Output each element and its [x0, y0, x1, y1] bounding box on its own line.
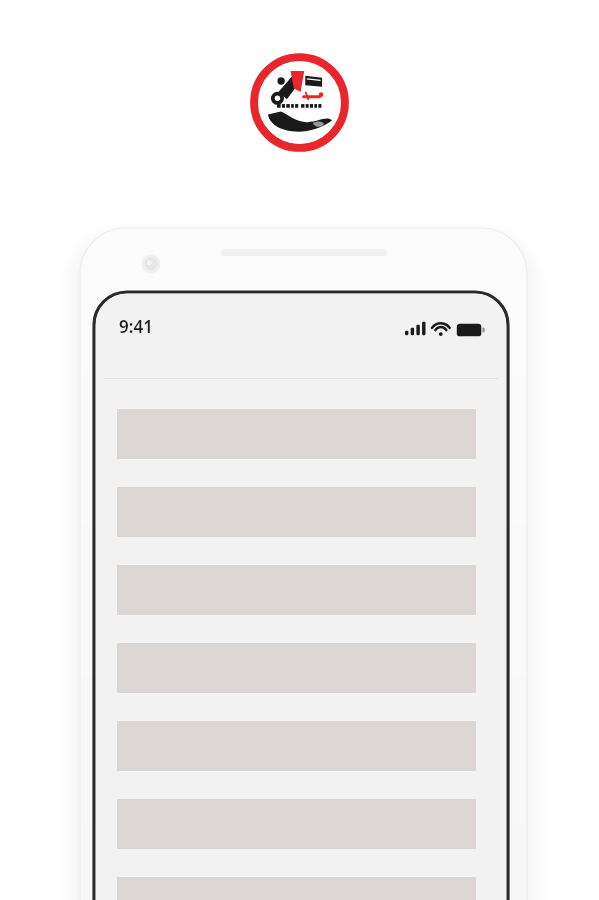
- staticText: 9:41: [119, 315, 153, 338]
- button[interactable]: Egypt Heroes logo: [247, 50, 352, 155]
